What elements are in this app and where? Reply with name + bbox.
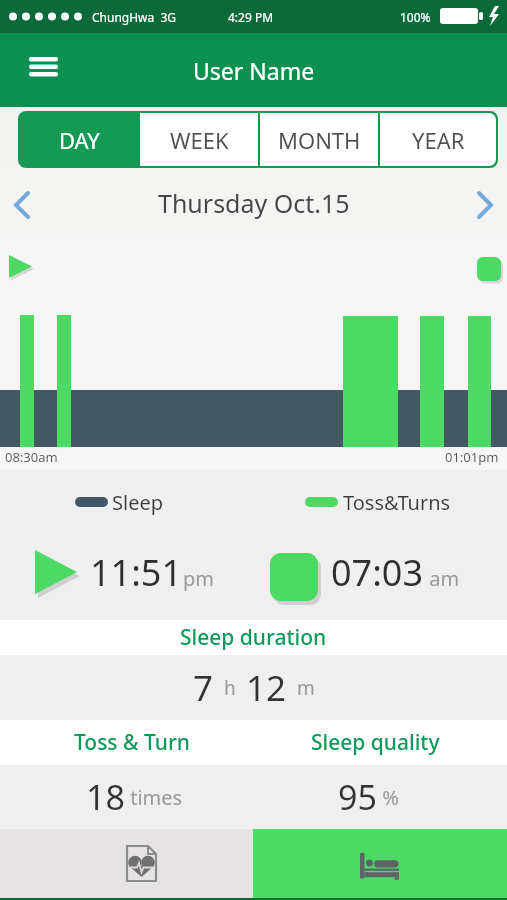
staticText: Sleep bbox=[112, 489, 163, 516]
staticText: 12 bbox=[246, 664, 287, 712]
staticText: Toss & Turn bbox=[74, 728, 190, 757]
staticText: 7 bbox=[193, 664, 214, 712]
staticText: WEEK bbox=[170, 125, 229, 155]
staticText: DAY bbox=[59, 125, 100, 155]
staticText: % bbox=[377, 784, 399, 811]
button[interactable] bbox=[0, 829, 253, 898]
staticText: 11:51 bbox=[90, 548, 183, 597]
button[interactable] bbox=[253, 829, 507, 898]
staticText: 4:29 PM bbox=[228, 9, 274, 25]
staticText: times bbox=[125, 784, 183, 811]
staticText: User Name bbox=[193, 55, 315, 86]
button[interactable] bbox=[22, 45, 66, 89]
button[interactable]: Thursday Oct.15 bbox=[0, 168, 507, 238]
staticText: Toss&Turns bbox=[343, 489, 451, 516]
staticText: 01:01pm bbox=[445, 448, 499, 466]
staticText: am bbox=[424, 565, 460, 592]
button[interactable]: WEEK bbox=[140, 113, 258, 166]
staticText: Thursday Oct.15 bbox=[158, 186, 350, 220]
staticText: 07:03 bbox=[331, 548, 424, 597]
staticText: m bbox=[287, 675, 315, 701]
staticText: MONTH bbox=[278, 125, 361, 155]
staticText: Sleep quality bbox=[311, 728, 440, 757]
staticText: 08:30am bbox=[5, 448, 58, 466]
staticText: 100% bbox=[400, 9, 431, 25]
staticText: h bbox=[214, 675, 246, 701]
staticText: YEAR bbox=[412, 125, 465, 155]
staticText: 18 bbox=[86, 774, 125, 820]
staticText: Sleep duration bbox=[180, 623, 327, 652]
button[interactable]: DAY bbox=[20, 113, 138, 166]
staticText: 95 bbox=[338, 774, 377, 820]
staticText: pm bbox=[183, 565, 214, 592]
staticText: ChungHwa 3G bbox=[92, 9, 177, 25]
button[interactable]: YEAR bbox=[380, 113, 496, 166]
button[interactable]: MONTH bbox=[260, 113, 378, 166]
